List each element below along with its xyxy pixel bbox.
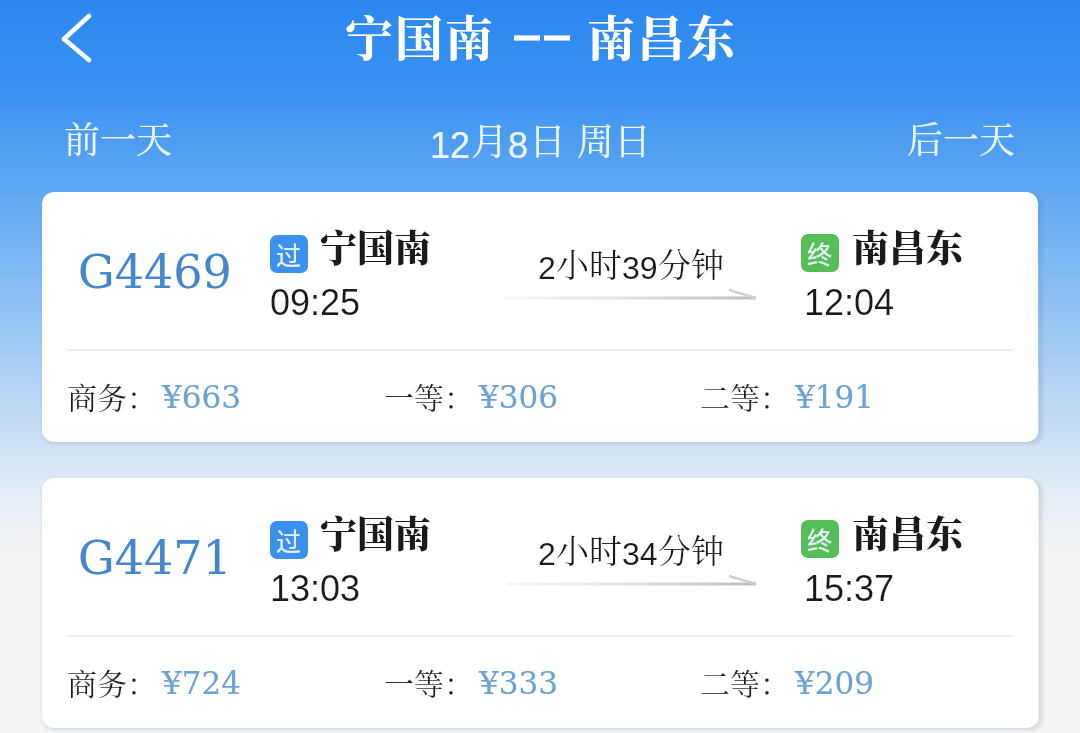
staticText: 过 [276,236,302,272]
staticText: 终 [807,521,833,557]
button[interactable]: 商务： [57,652,246,711]
button[interactable]: 后一天 [891,102,1032,174]
staticText: 一等： [384,374,474,417]
staticText: ¥663 [162,379,241,415]
staticText: 月 [471,112,508,165]
staticText: ¥724 [162,665,241,701]
staticText: G4469 [78,245,232,299]
staticText: 39 [622,250,658,286]
button[interactable]: 二等： [690,366,879,425]
staticText [566,125,577,165]
staticText: 周日 [577,112,651,165]
staticText: 南昌东 [852,505,963,558]
staticText: 13:03 [270,568,361,608]
staticText: 终 [807,235,833,271]
staticText: 34 [622,536,658,572]
button[interactable]: 商务： [57,366,246,425]
button[interactable]: 二等： [690,652,879,711]
staticText: 分钟 [658,525,724,572]
staticText: 2 [538,250,556,286]
button[interactable]: G4469 [42,192,1038,442]
staticText: 8 [508,125,529,165]
staticText: 15:37 [804,568,895,608]
staticText: 宁国南 [345,1,496,70]
button[interactable]: Back [30,0,98,78]
staticText: G4471 [78,531,232,585]
staticText: ¥306 [479,379,558,415]
staticText: 12 [430,125,471,165]
button[interactable]: 前一天 [48,102,189,174]
button[interactable]: 一等： [374,366,563,425]
staticText: 南昌东 [587,1,738,70]
staticText: 12:04 [804,282,895,322]
staticText: 分钟 [658,239,724,286]
staticText: 2 [538,536,556,572]
button[interactable]: G4471 [42,478,1038,728]
staticText: 小时 [556,239,622,286]
staticText: 宁国南 [320,219,431,272]
button[interactable]: 一等： [374,652,563,711]
staticText: 商务： [67,374,157,417]
staticText: 南昌东 [852,219,963,272]
staticText: 宁国南 [320,505,431,558]
staticText: ¥333 [479,665,558,701]
staticText: 商务： [67,660,157,703]
staticText: ¥209 [795,665,874,701]
staticText: ¥191 [795,379,874,415]
staticText: 一等： [384,660,474,703]
staticText: 二等： [700,660,790,703]
staticText: 过 [276,522,302,558]
staticText: 日 [529,112,566,165]
staticText: 09:25 [270,282,361,322]
staticText: 二等： [700,374,790,417]
staticText: 小时 [556,525,622,572]
